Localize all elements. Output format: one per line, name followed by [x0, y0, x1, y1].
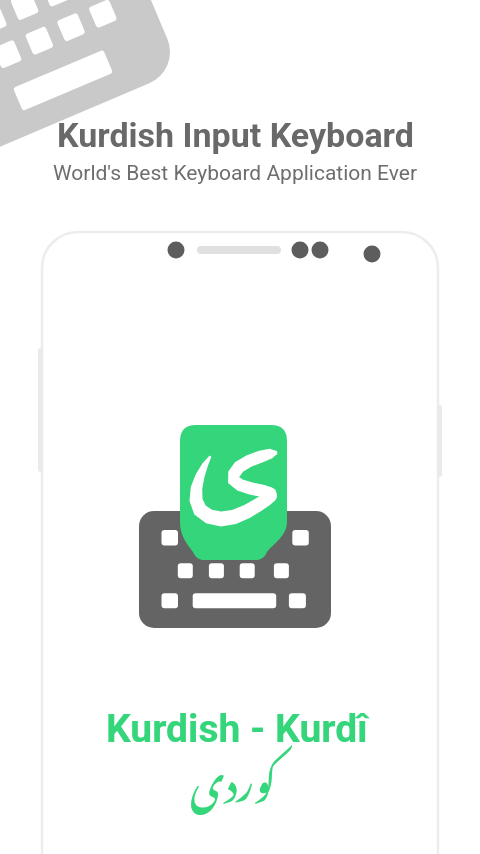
staticText: World's Best Keyboard Application Ever: [53, 161, 418, 186]
staticText: Kurdish Input Keyboard: [57, 115, 414, 155]
staticText: Kurdish - Kurdî: [106, 706, 368, 752]
staticText: کوردی: [190, 723, 277, 826]
